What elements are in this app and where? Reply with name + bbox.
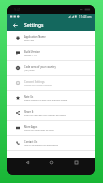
button[interactable]: Share It bbox=[7, 106, 95, 121]
button[interactable]: Back bbox=[11, 21, 19, 29]
button[interactable]: Consent Settings bbox=[7, 76, 95, 91]
staticText: Settings bbox=[24, 22, 44, 29]
staticText: Consent Settings bbox=[24, 80, 45, 84]
staticText: Share our app with your friends and fami… bbox=[24, 114, 66, 117]
staticText: Build Version bbox=[24, 50, 41, 54]
staticText: Contact Us bbox=[24, 140, 38, 144]
staticText: (+91) India bbox=[24, 69, 35, 72]
button[interactable]: Rate Us bbox=[7, 91, 95, 106]
button[interactable]: Back bbox=[22, 158, 32, 167]
button[interactable]: Application Name bbox=[7, 31, 95, 46]
staticText: Change the consent settings bbox=[24, 84, 53, 87]
button[interactable]: Recent apps bbox=[71, 158, 81, 167]
button[interactable]: Home bbox=[46, 158, 56, 167]
staticText: Rate Us bbox=[24, 95, 34, 99]
staticText: Version 1.1.0 bbox=[24, 54, 37, 57]
staticText: Please support us with your precious rev… bbox=[24, 99, 68, 102]
button[interactable]: More Apps bbox=[7, 121, 95, 136]
staticText: 11:43 am bbox=[79, 15, 92, 19]
staticText: Code area of your country bbox=[24, 65, 56, 69]
button[interactable]: Build Version bbox=[7, 46, 95, 61]
button[interactable]: Contact Us bbox=[7, 136, 95, 151]
staticText: Application Name bbox=[24, 35, 46, 39]
staticText: 9:41 bbox=[14, 7, 21, 12]
button[interactable]: Code area of your country bbox=[7, 61, 95, 76]
staticText: Check our other apps on store bbox=[24, 129, 54, 132]
staticText: Help us to improve our application bbox=[24, 144, 58, 147]
staticText: Share It bbox=[24, 110, 34, 114]
staticText: More Apps bbox=[24, 125, 38, 129]
staticText: Devil After bbox=[24, 39, 35, 42]
